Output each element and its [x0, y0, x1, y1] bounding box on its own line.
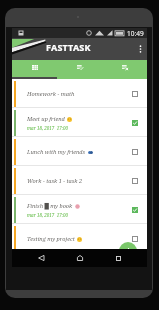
staticText: Finish █ my book [27, 202, 73, 210]
button[interactable]: Completed tasks [57, 60, 102, 79]
staticText: mar 18, 2017 17:00 [27, 125, 68, 131]
button[interactable]: Toggle completed [132, 91, 138, 97]
staticText: Work - task 1 - task 2 [27, 177, 83, 185]
staticText: Homework - math [27, 90, 75, 98]
button[interactable]: Lunch with my friends [12, 137, 147, 166]
staticText: Meet up friend [27, 115, 65, 123]
staticText: Testing my project [27, 235, 75, 243]
button[interactable]: Meet up friend [12, 108, 147, 137]
button[interactable]: All tasks [12, 60, 57, 79]
button[interactable]: Homework - math [12, 79, 147, 108]
staticText: mar 18, 2017 17:00 [27, 212, 68, 218]
button[interactable]: Home [70, 249, 90, 267]
staticText: FASTTASK [46, 41, 91, 53]
button[interactable]: Toggle completed [132, 207, 138, 213]
button[interactable]: Testing my project [12, 224, 147, 253]
button[interactable]: Add task [119, 242, 137, 260]
button[interactable]: Toggle completed [132, 178, 138, 184]
button[interactable]: Recent apps [108, 249, 128, 267]
button[interactable]: Finish █ my book [12, 195, 147, 224]
button[interactable]: Work - task 1 - task 2 [12, 166, 147, 195]
button[interactable]: Back [31, 249, 51, 267]
button[interactable]: Toggle completed [132, 149, 138, 155]
staticText: 10:49 [127, 29, 144, 38]
staticText: Lunch with my friends [27, 148, 86, 156]
button[interactable]: Toggle completed [132, 236, 138, 242]
button[interactable]: More options [133, 38, 147, 60]
button[interactable]: Cancelled tasks [102, 60, 147, 79]
button[interactable]: Toggle completed [132, 120, 138, 126]
